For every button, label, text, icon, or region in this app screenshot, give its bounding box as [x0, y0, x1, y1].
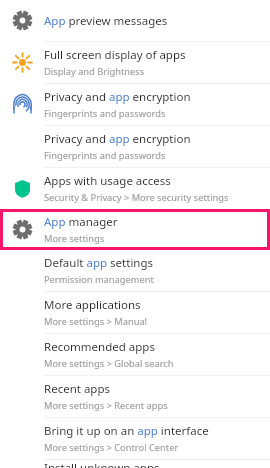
staticText: Security & Privacy > More security setti…	[44, 191, 229, 204]
button[interactable]: Default app settings	[0, 250, 270, 291]
staticText: More settings > Global search	[44, 357, 174, 370]
button[interactable]: More applications	[0, 292, 270, 333]
button[interactable]: Privacy and app encryption	[0, 126, 270, 167]
button[interactable]: Apps with usage access	[0, 168, 270, 209]
button[interactable]: Full screen display of apps	[0, 42, 270, 83]
staticText: Permission management	[44, 273, 154, 286]
staticText: Bring it up on an app interface	[44, 423, 209, 439]
staticText: Full screen display of apps	[44, 47, 186, 63]
staticText: Recent apps	[44, 381, 110, 397]
staticText: More settings > Control Center	[44, 441, 179, 454]
staticText: More settings > Recent apps	[44, 399, 168, 412]
staticText: Privacy and app encryption	[44, 131, 191, 147]
button[interactable]: Privacy and app encryption	[0, 84, 270, 125]
staticText: More applications	[44, 297, 141, 313]
staticText: App preview messages	[44, 13, 168, 29]
button[interactable]: Recent apps	[0, 376, 270, 417]
button[interactable]: App preview messages	[0, 0, 270, 41]
button[interactable]: Bring it up on an app interface	[0, 418, 270, 459]
staticText: More settings	[44, 232, 105, 245]
button[interactable]: App manager	[0, 209, 270, 250]
staticText: Display and Brightness	[44, 65, 145, 78]
staticText: Privacy and app encryption	[44, 89, 191, 105]
button[interactable]: Recommended apps	[0, 334, 270, 375]
staticText: App manager	[44, 214, 118, 230]
staticText: Install unknown apps	[44, 460, 160, 468]
staticText: Apps with usage access	[44, 173, 171, 189]
staticText: Fingerprints and passwords	[44, 107, 166, 120]
staticText: Fingerprints and passwords	[44, 149, 166, 162]
staticText: Default app settings	[44, 255, 154, 271]
button[interactable]: Install unknown apps	[0, 460, 270, 468]
staticText: Recommended apps	[44, 339, 155, 355]
staticText: More settings > Manual	[44, 315, 148, 328]
